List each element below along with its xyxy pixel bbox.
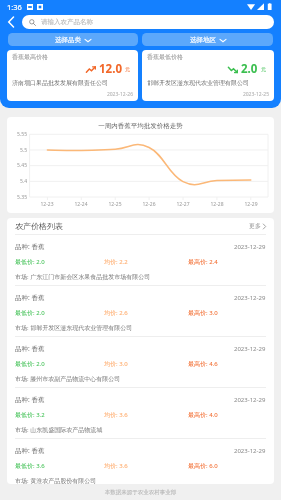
staticText: 济南堌口果品批发发展有限责任公司 — [12, 79, 108, 87]
staticText: 品种: 香蕉 — [15, 446, 45, 455]
staticText: 选择地区 — [190, 36, 216, 44]
staticText: 2023-12-29 — [234, 396, 266, 404]
staticText: 更多 — [249, 222, 261, 230]
staticText: 品种: 香蕉 — [15, 242, 45, 251]
button[interactable]: 更多 — [249, 222, 266, 230]
staticText: 品种: 香蕉 — [15, 395, 45, 404]
staticText: 均价: 2.6 — [104, 309, 188, 317]
staticText: 最高价: 6.0 — [188, 462, 218, 470]
staticText: 最高价: 2.4 — [188, 258, 218, 266]
staticText: 1:36 — [7, 2, 22, 12]
staticText: 2023-12-29 — [234, 294, 266, 302]
staticText: 品种: 香蕉 — [15, 293, 45, 302]
staticText: 2023-12-26 — [12, 91, 133, 98]
staticText: 最高价: 4.6 — [188, 360, 218, 368]
staticText: 12-24 — [71, 201, 91, 208]
button[interactable]: 香蕉最高价格 — [7, 50, 138, 101]
staticText: 市场: 山东凯盛国际农产品物流城 — [15, 426, 103, 434]
staticText: 12-26 — [139, 201, 159, 208]
staticText: 5.4 — [7, 178, 27, 185]
staticText: 2023-12-29 — [234, 243, 266, 251]
staticText: 12-23 — [37, 201, 57, 208]
staticText: 香蕉最低价格 — [147, 53, 183, 61]
staticText: 品种: 香蕉 — [15, 344, 45, 353]
staticText: 市场: 广东江门市新会区水果食品批发市场有限公司 — [15, 273, 151, 281]
button[interactable]: 品种: 香蕉 — [7, 388, 274, 438]
staticText: 元 — [261, 66, 266, 72]
staticText: 香蕉最高价格 — [12, 53, 48, 61]
staticText: 市场: 邯郸开发区滏东现代农业管理有限公司 — [15, 324, 133, 332]
staticText: 市场: 黄淮农产品股份有限公司 — [15, 477, 97, 484]
staticText: 最低价: 3.2 — [15, 411, 104, 419]
staticText: 元 — [125, 66, 130, 72]
staticText: 均价: 3.6 — [104, 462, 188, 470]
button[interactable]: 选择地区 — [142, 33, 273, 46]
button[interactable]: 请输入农产品名称 — [22, 15, 274, 29]
staticText: 5.5 — [7, 147, 27, 154]
button[interactable]: 选择品类 — [8, 33, 138, 46]
staticText: 2023-12-29 — [234, 345, 266, 353]
staticText: 请输入农产品名称 — [41, 18, 93, 26]
button[interactable]: 品种: 香蕉 — [7, 286, 274, 336]
button[interactable]: 香蕉最低价格 — [142, 50, 274, 101]
staticText: 12-27 — [173, 201, 193, 208]
staticText: 均价: 3.6 — [104, 411, 188, 419]
staticText: 2023-12-25 — [147, 91, 269, 98]
staticText: 一周内香蕉平均批发价格走势 — [7, 122, 274, 130]
button[interactable]: 品种: 香蕉 — [7, 337, 274, 387]
staticText: 5.55 — [7, 131, 27, 138]
staticText: 5.45 — [7, 162, 27, 169]
staticText: 最低价: 2.0 — [15, 258, 104, 266]
staticText: 5.35 — [7, 194, 27, 201]
staticText: 均价: 3.0 — [104, 360, 188, 368]
button[interactable]: 品种: 香蕉 — [7, 235, 274, 285]
staticText: 2.0 — [241, 61, 258, 77]
staticText: 农产价格列表 — [15, 221, 63, 231]
staticText: 2023-12-29 — [234, 447, 266, 455]
staticText: 最低价: 3.6 — [15, 462, 104, 470]
staticText: 本数据来源于农业农村事业部 — [0, 489, 281, 496]
button[interactable]: 品种: 香蕉 — [7, 439, 274, 484]
staticText: 最低价: 2.0 — [15, 360, 104, 368]
staticText: 邯郸开发区滏东现代农业管理有限公司 — [147, 79, 249, 87]
staticText: 12-25 — [105, 201, 125, 208]
staticText: 12.0 — [99, 61, 122, 77]
staticText: 12-28 — [207, 201, 227, 208]
staticText: 12-29 — [241, 201, 261, 208]
staticText: 最低价: 2.0 — [15, 309, 104, 317]
staticText: 市场: 滕州市农副产品物流中心有限公司 — [15, 375, 121, 383]
button[interactable]: Back — [0, 15, 22, 29]
staticText: 均价: 2.2 — [104, 258, 188, 266]
staticText: 最高价: 3.0 — [188, 309, 218, 317]
staticText: 选择品类 — [55, 36, 81, 44]
staticText: 最高价: 4.0 — [188, 411, 218, 419]
